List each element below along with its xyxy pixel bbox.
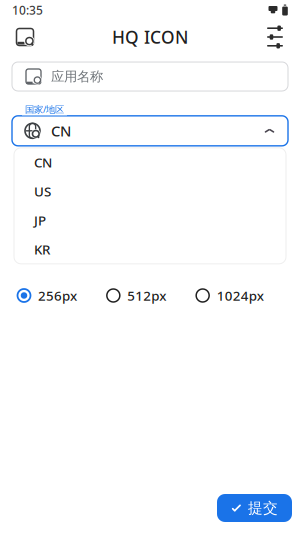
staticText: CN [51, 121, 71, 141]
button[interactable]: 512px [105, 283, 195, 308]
staticText: 10:35 [12, 2, 43, 18]
staticText: CN [34, 153, 52, 171]
staticText: HQ ICON [112, 25, 188, 48]
staticText: 提交 [248, 499, 278, 517]
staticText: 应用名称 [51, 68, 103, 85]
button[interactable]: 1024px [195, 283, 284, 308]
button[interactable]: Pick image [8, 20, 42, 54]
staticText: 512px [127, 287, 166, 304]
staticText: 国家/地区 [25, 103, 64, 115]
button[interactable]: CN [14, 148, 286, 177]
staticText: US [34, 182, 51, 200]
button[interactable]: JP [14, 206, 286, 235]
button[interactable]: 提交 [217, 494, 292, 522]
staticText: KR [34, 240, 50, 258]
button[interactable]: Settings [258, 20, 292, 54]
staticText: 256px [38, 287, 77, 304]
staticText: JP [34, 211, 46, 229]
staticText: 1024px [217, 287, 264, 304]
button[interactable]: KR [14, 235, 286, 264]
button[interactable]: US [14, 177, 286, 206]
button[interactable]: 256px [16, 283, 105, 308]
